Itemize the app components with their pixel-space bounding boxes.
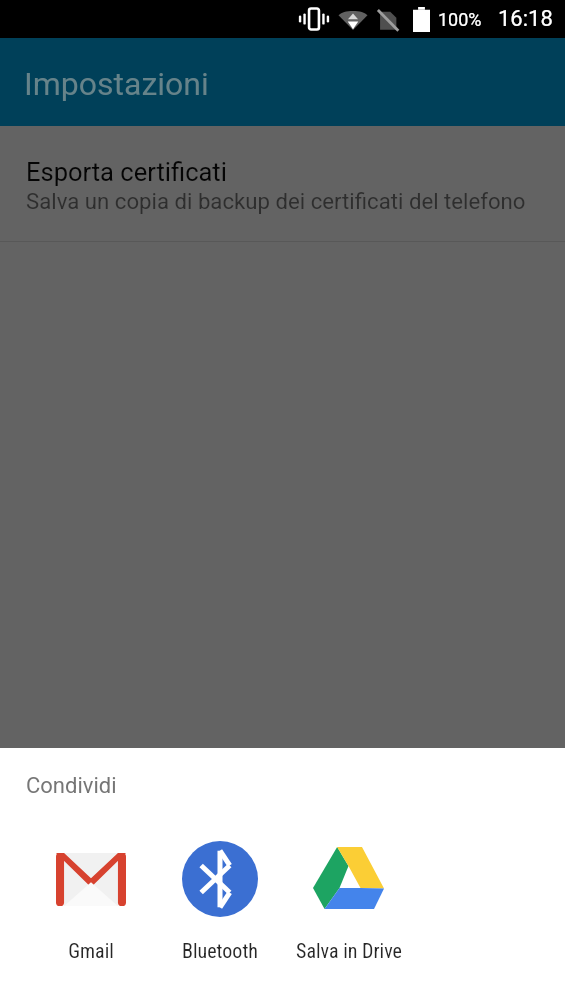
staticText: Impostazioni (24, 65, 209, 103)
staticText: Gmail (68, 939, 114, 962)
button[interactable]: Bluetooth (155, 839, 284, 964)
staticText: Bluetooth (182, 939, 258, 962)
staticText: Salva in Drive (296, 939, 402, 962)
staticText: 16:18 (498, 6, 553, 32)
other: Battery full (413, 7, 430, 32)
staticText: 100% (438, 9, 482, 30)
button[interactable]: Gmail (26, 839, 155, 964)
staticText: Condividi (26, 773, 117, 799)
other: Wi-Fi (338, 9, 368, 30)
staticText: Salva un copia di backup dei certificati… (26, 188, 526, 214)
staticText: Esporta certificati (26, 157, 227, 187)
button[interactable]: Salva in Drive (284, 839, 413, 964)
other: Ringer set to vibrate (301, 8, 327, 30)
other: No SIM card (377, 8, 399, 31)
button[interactable]: Esporta certificati (0, 126, 565, 241)
